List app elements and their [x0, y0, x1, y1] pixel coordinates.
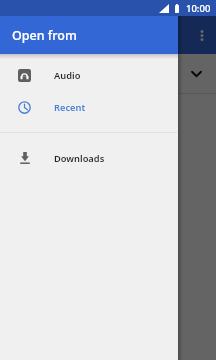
button[interactable]: Downloads	[0, 142, 178, 174]
button[interactable]: Recent	[0, 91, 178, 123]
button[interactable]: More options	[191, 24, 213, 46]
staticText: 10:00	[186, 2, 211, 15]
staticText: Audio	[54, 69, 81, 82]
button[interactable]: Expand	[188, 66, 204, 82]
staticText: Downloads	[54, 152, 105, 165]
button[interactable]: Audio	[0, 59, 178, 91]
staticText: Open from	[12, 27, 77, 44]
staticText: Recent	[54, 101, 86, 114]
